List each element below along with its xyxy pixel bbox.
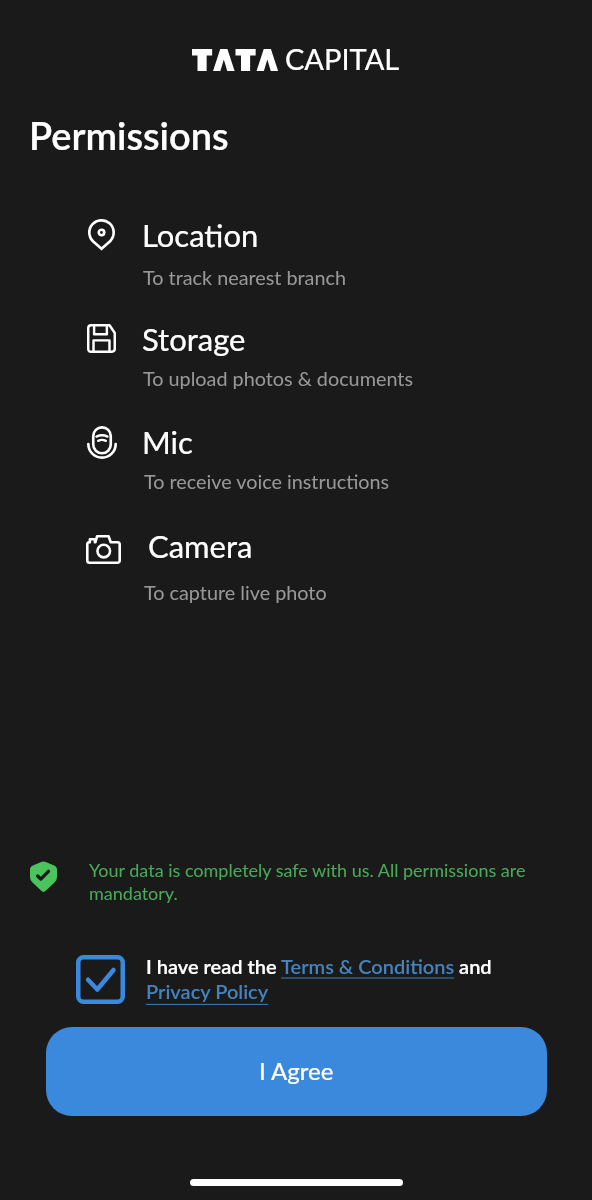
button[interactable]: Accept terms and conditions bbox=[74, 953, 127, 1006]
staticText: Location bbox=[142, 216, 259, 253]
button[interactable]: Storage bbox=[0, 320, 592, 415]
staticText: Mic bbox=[142, 423, 193, 460]
staticText: To track nearest branch bbox=[143, 265, 346, 289]
button[interactable]: I have read the Terms & Conditions and P… bbox=[146, 954, 494, 1004]
staticText: Permissions bbox=[29, 112, 229, 158]
button[interactable]: Location bbox=[0, 216, 592, 311]
button[interactable]: Mic bbox=[0, 423, 592, 518]
staticText: To upload photos & documents bbox=[143, 366, 413, 390]
staticText: Storage bbox=[142, 320, 246, 357]
staticText: Your data is completely safe with us. Al… bbox=[89, 859, 534, 904]
staticText: To receive voice instructions bbox=[144, 469, 390, 493]
staticText: To capture live photo bbox=[144, 580, 327, 604]
button[interactable]: Tata Capital bbox=[192, 41, 400, 76]
button[interactable]: Camera bbox=[0, 527, 592, 622]
staticText: Camera bbox=[148, 527, 253, 564]
staticText: CAPITAL bbox=[285, 41, 400, 76]
button[interactable]: I Agree bbox=[46, 1027, 547, 1116]
staticText: I Agree bbox=[259, 1056, 334, 1085]
